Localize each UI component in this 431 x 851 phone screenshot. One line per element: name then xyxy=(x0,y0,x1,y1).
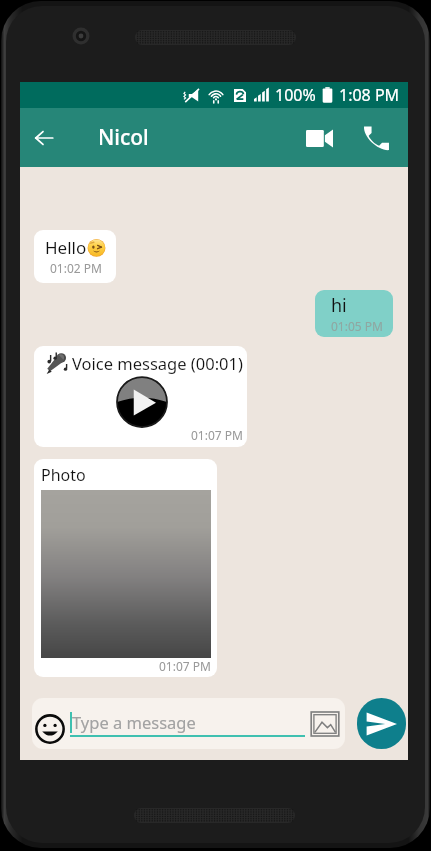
button[interactable]: Photo xyxy=(34,459,217,677)
button[interactable]: Voice message (00:01) xyxy=(34,346,247,447)
button[interactable]: Video call xyxy=(295,114,343,162)
button[interactable]: Type a message xyxy=(32,698,345,749)
staticText: Voice message (00:01) xyxy=(72,352,243,374)
staticText: 01:02 PM xyxy=(50,260,102,276)
button[interactable]: hi xyxy=(315,290,393,337)
staticText: Photo xyxy=(41,464,86,486)
staticText: Nicol xyxy=(98,123,149,152)
button[interactable]: Attach image xyxy=(310,709,340,739)
staticText: 01:07 PM xyxy=(159,658,211,674)
button[interactable]: Call xyxy=(352,114,400,162)
staticText: Type a message xyxy=(72,711,196,733)
button[interactable]: Send xyxy=(357,698,406,749)
staticText: 01:05 PM xyxy=(331,318,383,334)
staticText: hi xyxy=(331,293,347,318)
button[interactable]: Back xyxy=(20,114,68,162)
staticText: 01:07 PM xyxy=(191,427,243,443)
button[interactable]: Hello xyxy=(34,230,116,283)
staticText: 100% xyxy=(275,84,316,106)
staticText: 1:08 PM xyxy=(339,84,400,106)
staticText: Hello xyxy=(45,236,87,259)
